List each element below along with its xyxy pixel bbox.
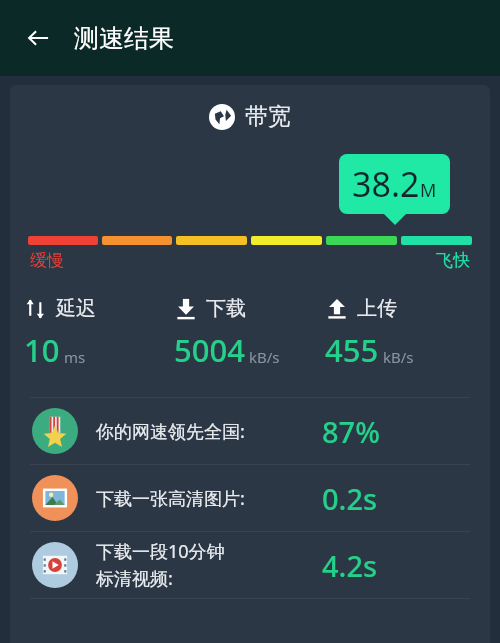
staticText: 87% bbox=[322, 412, 380, 451]
button[interactable]: 你的网速领先全国: bbox=[10, 398, 490, 464]
staticText: 下载 bbox=[206, 296, 246, 321]
staticText: 缓慢 bbox=[30, 250, 64, 271]
staticText: 延迟 bbox=[56, 296, 96, 321]
button[interactable]: 下载一张高清图片: bbox=[10, 465, 490, 531]
staticText: 上传 bbox=[357, 296, 397, 321]
staticText: 10 bbox=[24, 329, 60, 371]
staticText: 下载一张高清图片: bbox=[96, 486, 245, 511]
staticText: kB/s bbox=[383, 347, 414, 367]
staticText: 测速结果 bbox=[74, 23, 174, 54]
button[interactable]: 下载一段10分钟 bbox=[10, 532, 490, 598]
staticText: 带宽 bbox=[245, 102, 291, 131]
staticText: ms bbox=[64, 347, 86, 367]
staticText: 0.2s bbox=[322, 479, 378, 518]
staticText: 455 bbox=[325, 329, 379, 371]
staticText: 标清视频: bbox=[96, 566, 173, 591]
staticText: kB/s bbox=[249, 347, 280, 367]
staticText: 4.2s bbox=[322, 546, 378, 585]
staticText: M bbox=[420, 178, 437, 203]
staticText: 你的网速领先全国: bbox=[96, 419, 245, 444]
staticText: 38.2 bbox=[352, 161, 420, 207]
button[interactable]: Back bbox=[14, 14, 62, 62]
staticText: 下载一段10分钟 bbox=[96, 539, 225, 564]
staticText: 5004 bbox=[174, 329, 245, 371]
staticText: 飞快 bbox=[436, 250, 470, 271]
